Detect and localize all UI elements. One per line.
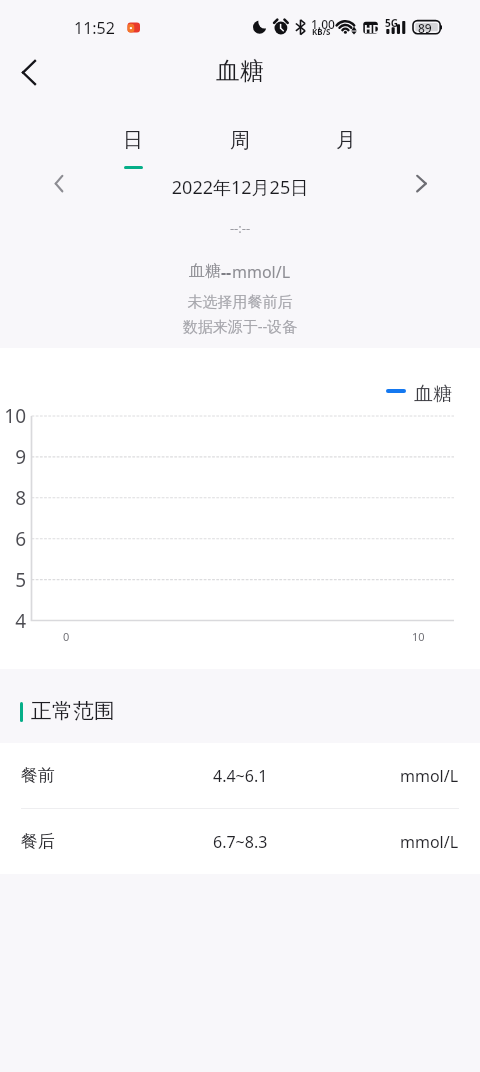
- staticText: 10: [412, 629, 425, 644]
- staticText: 9: [0, 444, 26, 470]
- button[interactable]: 月: [320, 110, 372, 166]
- staticText: 89: [418, 20, 432, 36]
- staticText: --:--: [0, 219, 480, 237]
- staticText: 10: [0, 403, 26, 429]
- staticText: mmol/L: [400, 831, 459, 853]
- staticText: 餐前: [21, 765, 55, 786]
- staticText: HD: [364, 21, 381, 36]
- button[interactable]: 日: [107, 110, 159, 166]
- button[interactable]: Previous day: [39, 164, 79, 204]
- staticText: KB/S: [312, 26, 331, 37]
- staticText: 血糖: [414, 382, 452, 406]
- button[interactable]: 餐前: [0, 743, 480, 808]
- staticText: 数据来源于--设备: [0, 316, 480, 336]
- button[interactable]: 周: [214, 110, 266, 166]
- staticText: --: [221, 261, 232, 283]
- staticText: 血糖: [189, 261, 221, 281]
- staticText: 正常范围: [31, 698, 115, 724]
- staticText: 2022年12月25日: [0, 175, 480, 200]
- staticText: 餐后: [21, 831, 55, 852]
- staticText: 4: [0, 608, 26, 634]
- staticText: 月: [336, 128, 356, 153]
- staticText: 周: [230, 128, 250, 153]
- staticText: mmol/L: [400, 765, 459, 787]
- staticText: 8: [0, 485, 26, 511]
- staticText: 日: [123, 128, 143, 153]
- button[interactable]: Next day: [401, 164, 441, 204]
- staticText: 6.7~8.3: [213, 831, 268, 853]
- staticText: 血糖: [216, 56, 264, 86]
- staticText: mmol/L: [232, 261, 291, 283]
- staticText: 6: [0, 526, 26, 552]
- staticText: 0: [63, 629, 70, 644]
- button[interactable]: 餐后: [0, 809, 480, 874]
- button[interactable]: Back: [6, 49, 52, 95]
- staticText: 11:52: [74, 17, 115, 39]
- staticText: 5G: [385, 16, 398, 30]
- staticText: 5: [0, 567, 26, 593]
- staticText: 1.00: [311, 16, 335, 32]
- staticText: 未选择用餐前后: [0, 293, 480, 312]
- staticText: 4.4~6.1: [213, 765, 268, 787]
